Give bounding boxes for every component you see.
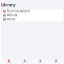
staticText: Recently Added: [7, 9, 30, 13]
staticText: Albums: [7, 13, 17, 17]
staticText: Library: [1, 2, 15, 7]
staticText: Home: [7, 62, 11, 63]
button[interactable]: More: [48, 60, 64, 63]
staticText: Artists: [7, 17, 15, 21]
staticText: More: [54, 62, 58, 63]
staticText: Radio: [38, 62, 42, 63]
button[interactable]: Search: [17, 60, 33, 63]
button[interactable]: Artists: [2, 17, 63, 21]
button[interactable]: Recently Added: [2, 9, 63, 13]
staticText: Search: [22, 62, 28, 63]
button[interactable]: Radio: [32, 60, 48, 63]
button[interactable]: Home: [1, 60, 17, 63]
button[interactable]: Albums: [2, 13, 63, 17]
